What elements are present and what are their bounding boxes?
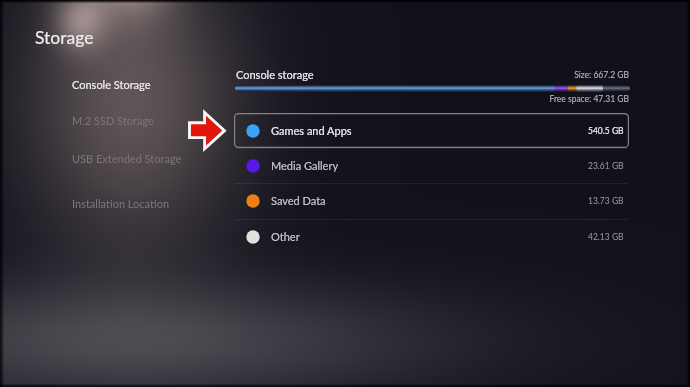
staticText: Saved Data — [271, 194, 326, 207]
button[interactable]: USB Extended Storage — [62, 150, 192, 166]
button[interactable]: Saved Data — [234, 183, 629, 218]
staticText: Console storage — [236, 68, 314, 81]
staticText: 13.73 GB — [588, 196, 624, 206]
button[interactable]: Other — [234, 219, 629, 254]
staticText: 42.13 GB — [588, 232, 624, 242]
staticText: 23.61 GB — [588, 161, 624, 171]
button[interactable]: M.2 SSD Storage — [62, 112, 192, 128]
button[interactable]: Games and Apps — [234, 113, 629, 148]
staticText: Free space: 47.31 GB — [509, 94, 629, 104]
staticText: Other — [271, 230, 300, 243]
other: Pointer arrow — [186, 108, 228, 153]
staticText: Games and Apps — [271, 124, 352, 137]
staticText: Console Storage — [72, 78, 151, 91]
staticText: Size: 667.2 GB — [529, 70, 629, 80]
staticText: Media Gallery — [271, 159, 339, 172]
staticText: Storage — [35, 27, 94, 48]
staticText: 540.5 GB — [588, 126, 624, 136]
staticText: Installation Location — [72, 197, 170, 210]
staticText: M.2 SSD Storage — [72, 114, 154, 127]
button[interactable]: Console Storage — [62, 76, 192, 92]
button[interactable]: Media Gallery — [234, 148, 629, 183]
button[interactable]: Installation Location — [62, 195, 192, 211]
staticText: USB Extended Storage — [72, 152, 182, 165]
